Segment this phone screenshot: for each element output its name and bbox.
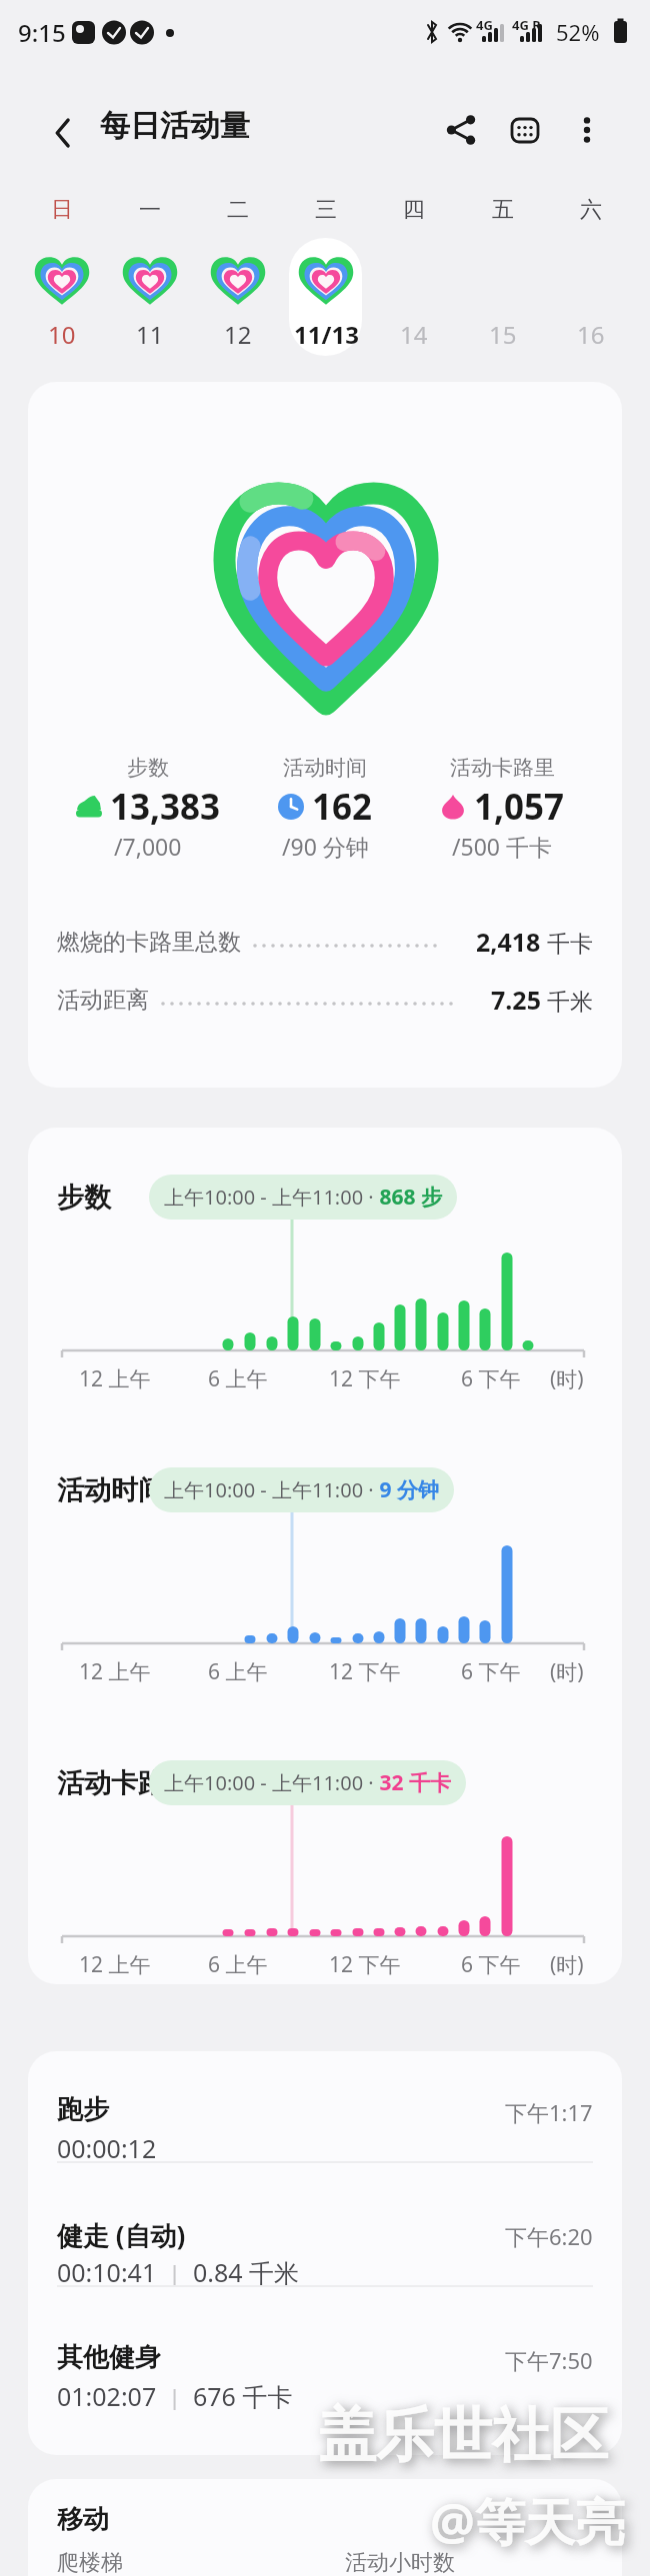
button[interactable] xyxy=(44,113,84,153)
staticText: 676 千卡 xyxy=(193,2379,293,2413)
staticText: 活动时间 xyxy=(57,1473,165,1507)
staticText: 12 下午 xyxy=(329,1950,401,1979)
staticText: 四 xyxy=(403,196,425,224)
staticText: 二 xyxy=(227,196,249,224)
staticText: 16 xyxy=(577,318,605,351)
staticText: 上午10:00 - 上午11:00 · xyxy=(164,1476,374,1503)
staticText: 活动距离 xyxy=(57,986,149,1015)
button[interactable] xyxy=(209,252,267,310)
button[interactable] xyxy=(297,252,355,310)
staticText: 0.84 千米 xyxy=(193,2255,300,2289)
staticText: 52% xyxy=(556,17,600,47)
staticText: /500 千卡 xyxy=(452,831,553,862)
staticText: 32 千卡 xyxy=(374,1768,451,1797)
button[interactable] xyxy=(33,252,91,310)
staticText: 11 xyxy=(136,318,164,351)
staticText: 4G R xyxy=(512,16,541,34)
staticText: 12 上午 xyxy=(79,1364,151,1393)
staticText: 6 上午 xyxy=(208,1364,268,1393)
staticText: 千米 xyxy=(541,985,593,1016)
staticText: 盖乐世社区 xyxy=(318,2399,608,2472)
staticText: 14 xyxy=(400,318,428,351)
staticText: 13,383 xyxy=(110,783,221,831)
staticText: 活动时间 xyxy=(283,755,367,781)
staticText: @等天亮 xyxy=(430,2487,625,2555)
staticText: 千卡 xyxy=(541,927,593,958)
staticText: | xyxy=(157,2257,193,2287)
button[interactable]: 健走 (自动) xyxy=(28,2189,622,2307)
staticText: 1,057 xyxy=(474,783,565,831)
staticText: 6 上午 xyxy=(208,1950,268,1979)
staticText: 12 上午 xyxy=(79,1950,151,1979)
staticText: (时) xyxy=(550,1950,584,1979)
staticText: 7.25 xyxy=(491,983,541,1017)
staticText: 下午7:50 xyxy=(505,2345,593,2375)
staticText: 六 xyxy=(580,196,602,224)
staticText: 6 下午 xyxy=(461,1950,521,1979)
staticText: 9:15 xyxy=(18,16,66,49)
staticText: (时) xyxy=(550,1364,584,1393)
button[interactable] xyxy=(572,115,604,147)
staticText: 162 xyxy=(312,783,373,831)
staticText: 00:10:41 xyxy=(57,2255,157,2289)
staticText: 跑步 xyxy=(57,2093,109,2126)
staticText: 11/13 xyxy=(294,318,359,351)
staticText: 15 xyxy=(489,318,517,351)
staticText: 00:00:12 xyxy=(57,2131,157,2165)
button[interactable]: 其他健身 xyxy=(28,2313,622,2431)
staticText: 每日活动量 xyxy=(100,107,250,145)
staticText: 步数 xyxy=(127,755,169,781)
staticText: 五 xyxy=(492,196,514,224)
button[interactable]: 跑步 xyxy=(28,2065,622,2183)
staticText: 日 xyxy=(51,196,73,224)
staticText: 12 上午 xyxy=(79,1657,151,1686)
staticText: 12 下午 xyxy=(329,1657,401,1686)
staticText: 10 xyxy=(48,318,76,351)
staticText: 4G xyxy=(476,16,493,34)
staticText: 活动小时数 xyxy=(345,2549,455,2576)
staticText: 下午6:20 xyxy=(505,2221,593,2251)
staticText: 12 xyxy=(224,318,252,351)
staticText: /90 分钟 xyxy=(282,831,369,862)
staticText: 活动卡路里 xyxy=(450,755,555,781)
button[interactable] xyxy=(510,115,542,147)
staticText: 三 xyxy=(315,196,337,224)
staticText: 一 xyxy=(139,196,161,224)
staticText: /7,000 xyxy=(114,831,182,862)
staticText: 2,418 xyxy=(476,925,541,959)
button[interactable] xyxy=(121,252,179,310)
staticText: 01:02:07 xyxy=(57,2379,157,2413)
staticText: 6 上午 xyxy=(208,1657,268,1686)
staticText: 9 分钟 xyxy=(374,1475,439,1504)
staticText: 上午10:00 - 上午11:00 · xyxy=(164,1769,374,1796)
staticText: 上午10:00 - 上午11:00 · xyxy=(164,1184,374,1211)
staticText: 活动卡路里 xyxy=(57,1766,192,1800)
staticText: 其他健身 xyxy=(57,2341,161,2374)
button[interactable] xyxy=(446,115,478,147)
staticText: 步数 xyxy=(57,1181,111,1215)
staticText: 6 下午 xyxy=(461,1364,521,1393)
staticText: 下午1:17 xyxy=(505,2097,593,2127)
staticText: 移动 xyxy=(57,2503,109,2536)
staticText: 12 下午 xyxy=(329,1364,401,1393)
staticText: 868 步 xyxy=(374,1183,442,1212)
staticText: 爬楼梯 xyxy=(57,2549,123,2576)
staticText: | xyxy=(157,2381,193,2411)
staticText: (时) xyxy=(550,1657,584,1686)
staticText: 健走 (自动) xyxy=(57,2217,186,2253)
staticText: 6 下午 xyxy=(461,1657,521,1686)
staticText: 燃烧的卡路里总数 xyxy=(57,928,241,957)
